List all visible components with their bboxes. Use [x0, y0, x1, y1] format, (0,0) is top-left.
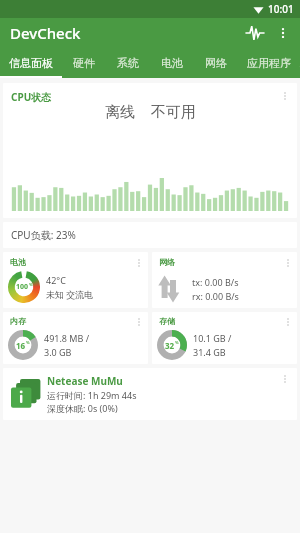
button[interactable]: 存储: [152, 312, 297, 364]
staticText: 信息面板: [9, 56, 53, 70]
staticText: %: [26, 340, 30, 345]
button[interactable]: 信息面板: [0, 48, 62, 78]
staticText: 网络: [205, 56, 227, 70]
staticText: 16: [16, 340, 26, 351]
button[interactable]: Card menu: [280, 255, 296, 271]
staticText: 10.1 GB /: [193, 332, 232, 344]
staticText: 100: [16, 282, 29, 292]
staticText: 不可用: [151, 103, 196, 122]
button[interactable]: Card menu: [277, 371, 293, 387]
staticText: 离线: [105, 103, 135, 122]
staticText: rx: 0.00 B/s: [192, 290, 239, 302]
button[interactable]: 电池: [3, 252, 148, 308]
staticText: 491.8 MB /: [44, 332, 90, 344]
button[interactable]: Card menu: [277, 88, 293, 104]
staticText: CPU负载: 23%: [11, 228, 76, 242]
staticText: %: [29, 282, 33, 287]
staticText: 未知 交流电: [46, 288, 94, 300]
staticText: tx: 0.00 B/s: [192, 276, 239, 288]
staticText: 电池: [10, 257, 26, 267]
staticText: 3.0 GB: [44, 346, 72, 358]
staticText: 42°C: [46, 274, 66, 286]
button[interactable]: Card menu: [131, 314, 147, 330]
button[interactable]: Card menu: [131, 255, 147, 271]
button[interactable]: 网络: [194, 48, 238, 78]
staticText: 32: [165, 340, 175, 351]
button[interactable]: 系统: [106, 48, 150, 78]
staticText: 网络: [159, 257, 175, 267]
button[interactable]: 内存: [3, 312, 148, 364]
staticText: 10:01: [268, 2, 294, 16]
staticText: %: [175, 340, 179, 345]
staticText: 31.4 GB: [193, 346, 226, 358]
staticText: CPU状态: [11, 90, 52, 104]
staticText: 内存: [10, 316, 26, 326]
staticText: Netease MuMu: [47, 374, 123, 388]
button[interactable]: CPU负载: 23%: [3, 222, 297, 248]
button[interactable]: 应用程序: [238, 48, 300, 78]
button[interactable]: 硬件: [62, 48, 106, 78]
staticText: 系统: [117, 56, 139, 70]
staticText: 深度休眠: 0s (0%): [47, 402, 118, 414]
button[interactable]: Card menu: [280, 314, 296, 330]
button[interactable]: More options: [270, 20, 296, 46]
button[interactable]: CPU状态: [3, 83, 297, 218]
button[interactable]: Monitor: [240, 18, 270, 48]
staticText: 电池: [161, 56, 183, 70]
button[interactable]: Card menu: [3, 368, 297, 420]
staticText: 硬件: [73, 56, 95, 70]
staticText: 应用程序: [247, 56, 291, 70]
staticText: 运行时间: 1h 29m 44s: [47, 389, 137, 401]
staticText: DevCheck: [10, 23, 81, 43]
staticText: 存储: [159, 316, 175, 326]
button[interactable]: 网络: [152, 252, 297, 308]
button[interactable]: 电池: [150, 48, 194, 78]
